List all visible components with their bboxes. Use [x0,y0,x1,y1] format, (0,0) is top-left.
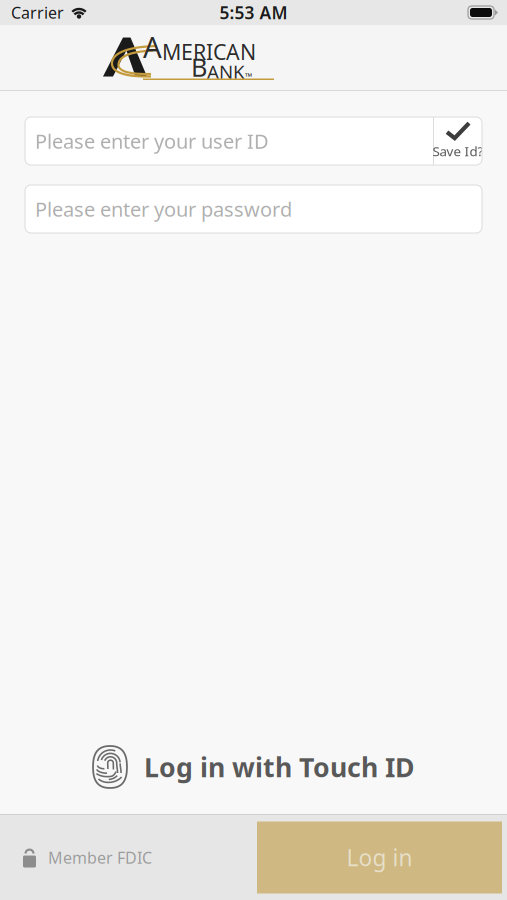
staticText: Save Id? [432,142,483,160]
staticText: Carrier [11,2,64,23]
staticText: Please enter your user ID [35,128,269,154]
staticText: Please enter your password [35,196,292,222]
button[interactable]: Log in with Touch ID [92,745,415,789]
staticText: ™ [245,70,252,83]
staticText: Log in [346,842,412,872]
button[interactable]: Save Id? [434,117,482,165]
button[interactable]: Log in [257,821,502,893]
staticText: MERICAN [162,38,256,66]
staticText: 5:53 AM [219,1,287,24]
staticText: ANK [207,59,245,84]
staticText: A [143,27,162,66]
staticText: Log in with Touch ID [144,749,415,785]
staticText: Member FDIC [48,847,152,868]
staticText: B [191,50,207,84]
